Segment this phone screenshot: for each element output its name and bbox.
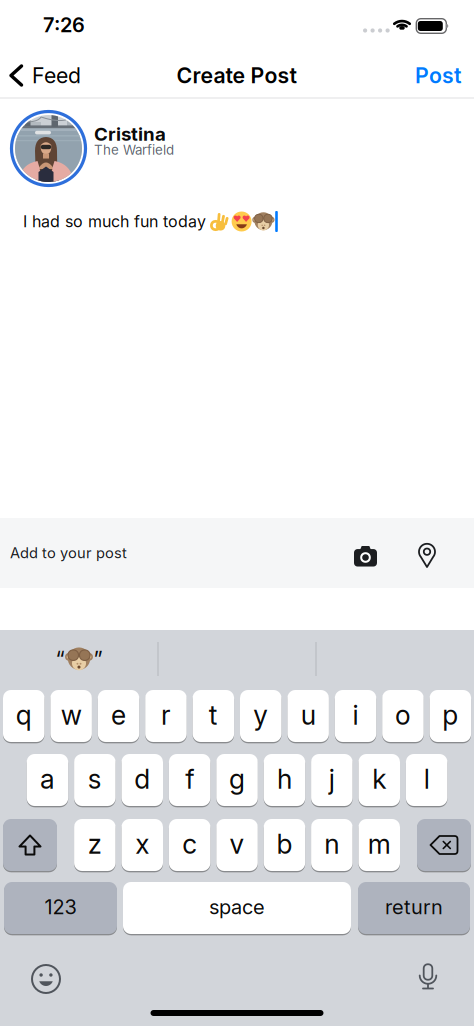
staticText: x bbox=[135, 828, 149, 860]
button[interactable]: z bbox=[74, 818, 116, 872]
staticText: p bbox=[442, 699, 458, 731]
staticText: Feed bbox=[32, 63, 81, 88]
button[interactable]: “ bbox=[4, 637, 154, 681]
button[interactable]: m bbox=[358, 818, 400, 872]
staticText: The Warfield bbox=[94, 142, 174, 158]
button[interactable]: l bbox=[406, 753, 447, 807]
staticText: space bbox=[209, 895, 265, 919]
button[interactable]: i bbox=[335, 689, 376, 743]
button[interactable]: return bbox=[358, 881, 470, 935]
staticText: r bbox=[161, 699, 171, 731]
staticText: “ bbox=[55, 646, 64, 672]
staticText: o bbox=[395, 699, 411, 731]
staticText: Create Post bbox=[176, 63, 297, 88]
staticText: q bbox=[16, 699, 32, 731]
staticText: b bbox=[276, 828, 292, 860]
button[interactable] bbox=[416, 962, 440, 994]
staticText: Post bbox=[415, 63, 462, 88]
staticText: f bbox=[185, 763, 194, 795]
button[interactable] bbox=[417, 818, 471, 872]
staticText: n bbox=[324, 828, 339, 860]
button[interactable]: k bbox=[358, 753, 400, 807]
staticText: w bbox=[61, 699, 82, 731]
staticText: v bbox=[229, 828, 244, 860]
button[interactable] bbox=[31, 964, 61, 994]
staticText: d bbox=[134, 763, 150, 795]
staticText: l bbox=[424, 763, 430, 795]
button[interactable] bbox=[9, 109, 87, 187]
button[interactable]: b bbox=[264, 818, 305, 872]
button[interactable]: q bbox=[3, 689, 44, 743]
button[interactable]: u bbox=[287, 689, 329, 743]
button[interactable]: o bbox=[382, 689, 424, 743]
staticText: c bbox=[182, 828, 197, 860]
button[interactable] bbox=[353, 545, 377, 567]
staticText: m bbox=[368, 828, 391, 860]
button[interactable]: x bbox=[121, 818, 163, 872]
staticText: Add to your post bbox=[10, 544, 127, 562]
staticText: e bbox=[111, 699, 126, 731]
staticText: ” bbox=[93, 646, 102, 672]
button[interactable]: n bbox=[311, 818, 353, 872]
staticText: Cristina bbox=[94, 123, 166, 145]
button[interactable]: space bbox=[123, 881, 351, 935]
button[interactable] bbox=[417, 542, 437, 568]
staticText: a bbox=[40, 763, 55, 795]
staticText: z bbox=[88, 828, 102, 860]
button[interactable]: I had so much fun today bbox=[23, 206, 443, 236]
staticText: I had so much fun today bbox=[23, 212, 206, 231]
button[interactable]: p bbox=[430, 689, 471, 743]
button[interactable]: y bbox=[240, 689, 281, 743]
button[interactable]: e bbox=[98, 689, 139, 743]
button[interactable]: v bbox=[216, 818, 258, 872]
button[interactable]: w bbox=[50, 689, 92, 743]
staticText: return bbox=[385, 895, 443, 919]
button[interactable]: g bbox=[216, 753, 258, 807]
button[interactable]: r bbox=[145, 689, 187, 743]
button[interactable]: a bbox=[27, 753, 68, 807]
button[interactable]: j bbox=[311, 753, 353, 807]
staticText: 7:26 bbox=[43, 13, 85, 37]
staticText: h bbox=[277, 763, 292, 795]
button[interactable]: h bbox=[264, 753, 305, 807]
staticText: 123 bbox=[44, 895, 76, 919]
staticText: s bbox=[88, 763, 102, 795]
staticText: g bbox=[229, 763, 245, 795]
button[interactable] bbox=[3, 818, 57, 872]
staticText: y bbox=[253, 699, 268, 731]
staticText: i bbox=[353, 699, 359, 731]
button[interactable]: 123 bbox=[4, 881, 117, 935]
staticText: u bbox=[301, 699, 316, 731]
button[interactable]: Feed bbox=[9, 60, 119, 90]
button[interactable]: Post bbox=[402, 60, 462, 90]
button[interactable]: t bbox=[193, 689, 234, 743]
button[interactable]: c bbox=[169, 818, 210, 872]
staticText: k bbox=[372, 763, 386, 795]
button[interactable]: f bbox=[169, 753, 210, 807]
button[interactable]: Add to your post bbox=[10, 542, 230, 564]
staticText: t bbox=[209, 699, 218, 731]
button[interactable]: s bbox=[74, 753, 116, 807]
button[interactable]: d bbox=[121, 753, 163, 807]
staticText: j bbox=[329, 763, 335, 795]
